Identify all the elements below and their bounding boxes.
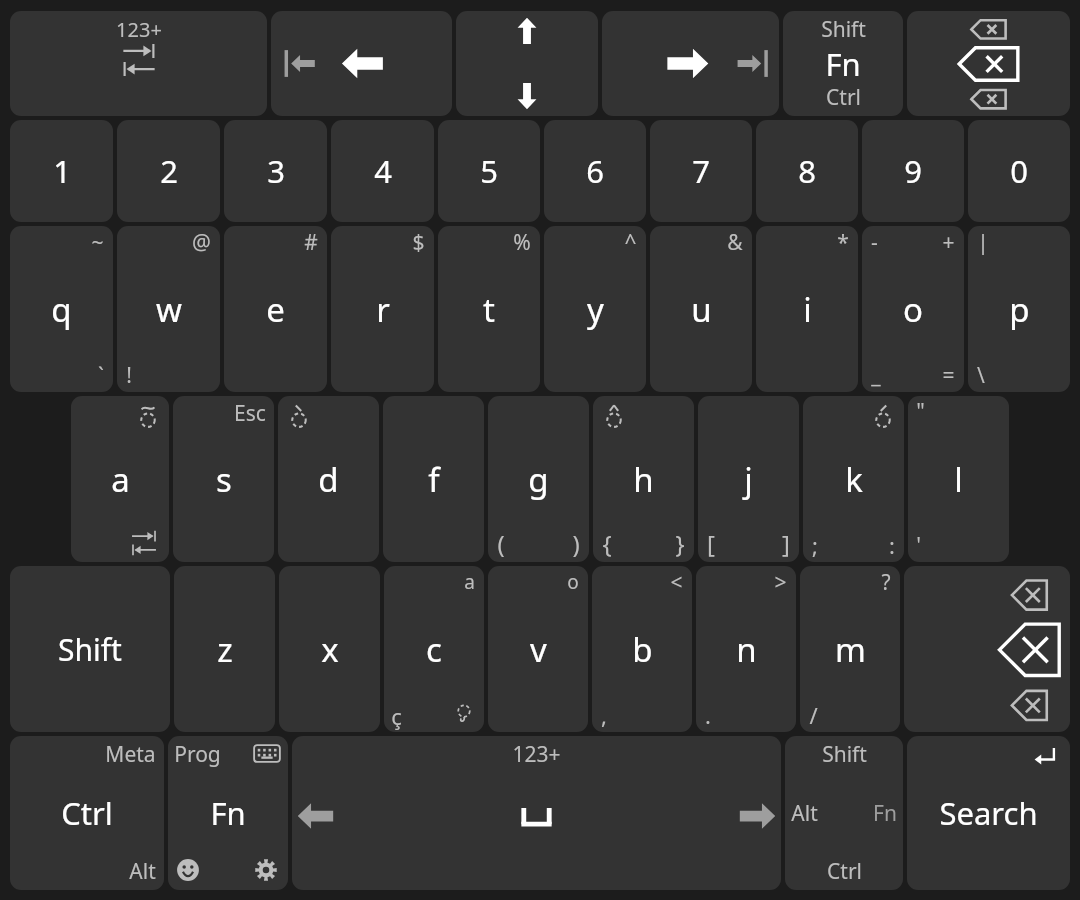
staticText: " (916, 397, 925, 426)
staticText: : (889, 530, 895, 560)
button[interactable]: i (756, 226, 858, 392)
staticText: Shift (822, 740, 867, 769)
button[interactable]: p (968, 226, 1070, 392)
staticText: 1 (53, 150, 71, 192)
button[interactable]: b (592, 566, 692, 732)
button[interactable]: Cursor right (602, 11, 779, 116)
button[interactable]: u (650, 226, 752, 392)
button[interactable]: Shift (10, 566, 170, 732)
staticText: b (632, 627, 653, 672)
button[interactable]: Search (907, 736, 1070, 890)
button[interactable]: g (488, 396, 589, 562)
staticText: l (954, 457, 963, 502)
staticText: a (111, 457, 130, 502)
button[interactable]: w (117, 226, 220, 392)
button[interactable]: l (908, 396, 1009, 562)
staticText: m (835, 627, 866, 672)
staticText: 3 (267, 150, 285, 192)
staticText: 7 (692, 150, 710, 192)
button[interactable]: s (173, 396, 274, 562)
button[interactable]: 7 (650, 120, 752, 222)
staticText: . (705, 700, 711, 730)
staticText: ? (881, 568, 891, 597)
staticText: q (51, 287, 72, 332)
staticText: - (871, 228, 878, 257)
button[interactable]: Delete (907, 11, 1070, 116)
staticText: @ (192, 228, 211, 257)
button[interactable]: 4 (331, 120, 434, 222)
staticText: h (633, 457, 654, 502)
staticText: < (670, 568, 683, 597)
staticText: ( (497, 527, 505, 560)
staticText: $ (412, 228, 425, 257)
staticText: z (217, 627, 233, 672)
button[interactable]: o (862, 226, 964, 392)
staticText: > (774, 568, 787, 597)
button[interactable]: q (10, 226, 113, 392)
staticText: r (376, 287, 390, 332)
staticText: | (977, 228, 989, 257)
button[interactable]: 3 (224, 120, 327, 222)
staticText: Fn (210, 792, 246, 834)
staticText: Search (939, 792, 1038, 834)
button[interactable]: f (383, 396, 484, 562)
staticText: f (428, 457, 440, 502)
staticText: } (675, 527, 685, 560)
button[interactable]: Cursor up and down (456, 11, 598, 116)
button[interactable]: y (544, 226, 646, 392)
staticText: Esc (234, 399, 266, 428)
button[interactable]: d (278, 396, 379, 562)
button[interactable]: Prog (168, 736, 288, 890)
button[interactable]: 1 (10, 120, 113, 222)
staticText: c (426, 627, 442, 672)
staticText: [ (707, 527, 715, 560)
button[interactable]: Backspace (904, 566, 1070, 732)
button[interactable]: e (224, 226, 327, 392)
staticText: , (601, 700, 607, 730)
button[interactable]: a (71, 396, 169, 562)
button[interactable]: r (331, 226, 434, 392)
staticText: w (156, 287, 182, 332)
button[interactable]: z (174, 566, 275, 732)
button[interactable]: n (696, 566, 796, 732)
staticText: # (304, 228, 318, 257)
button[interactable]: 8 (756, 120, 858, 222)
button[interactable]: m (800, 566, 900, 732)
staticText: Alt (791, 799, 818, 828)
staticText: i (803, 287, 812, 332)
button[interactable]: k (803, 396, 904, 562)
staticText: Fn (873, 799, 897, 828)
button[interactable]: 9 (862, 120, 964, 222)
staticText: ' (916, 531, 921, 560)
staticText: / (809, 700, 818, 730)
button[interactable]: v (488, 566, 588, 732)
button[interactable]: x (279, 566, 380, 732)
staticText: ; (812, 530, 818, 560)
button[interactable]: Shift (783, 11, 903, 116)
staticText: % (513, 228, 531, 257)
staticText: 5 (480, 150, 498, 192)
button[interactable]: t (438, 226, 540, 392)
button[interactable]: 2 (117, 120, 220, 222)
staticText: k (845, 457, 863, 502)
button[interactable]: h (593, 396, 694, 562)
button[interactable]: Shift (785, 736, 903, 890)
staticText: 123+ (512, 740, 561, 769)
button[interactable]: 0 (968, 120, 1070, 222)
staticText: \ (977, 361, 985, 390)
button[interactable]: Meta (10, 736, 164, 890)
button[interactable]: 5 (438, 120, 540, 222)
button[interactable]: Space (292, 736, 781, 890)
staticText: Prog (174, 740, 221, 769)
staticText: Fn (825, 43, 861, 85)
button[interactable]: Symbols 123 plus (10, 11, 267, 116)
staticText: o (903, 287, 923, 332)
staticText: _ (871, 361, 881, 390)
button[interactable]: c (384, 566, 484, 732)
button[interactable]: Cursor left (271, 11, 452, 116)
button[interactable]: j (698, 396, 799, 562)
staticText: 8 (798, 150, 816, 192)
button[interactable]: 6 (544, 120, 646, 222)
staticText: o (567, 569, 579, 595)
staticText: Alt (129, 857, 156, 886)
